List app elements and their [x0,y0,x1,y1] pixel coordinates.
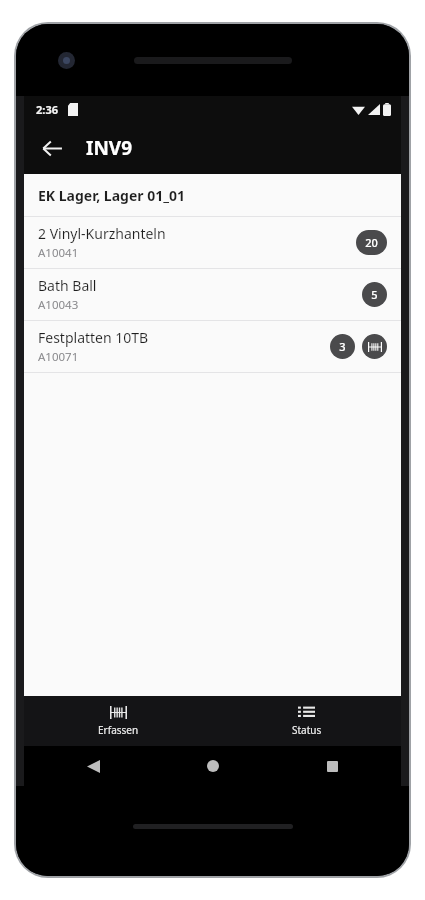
staticText: INV9 [86,135,133,161]
button[interactable]: EK Lager, Lager 01_01 [24,174,401,216]
staticText: Festplatten 10TB [38,328,149,347]
button[interactable]: Back [30,126,74,170]
staticText: 20 [365,235,378,250]
staticText: Erfassen [98,723,139,737]
button[interactable]: Scan barcode [362,334,387,359]
staticText: 2 Vinyl-Kurzhanteln [38,224,166,243]
staticText: 2:36 [36,102,58,117]
staticText: A10043 [38,297,79,313]
staticText: Status [292,723,322,737]
staticText: 5 [371,287,378,302]
button[interactable]: Bath Ball [24,269,401,320]
staticText: Bath Ball [38,276,97,295]
staticText: 3 [339,339,346,354]
button[interactable]: Festplatten 10TB [24,321,401,372]
staticText: A10041 [38,245,79,261]
button[interactable]: Recent apps [315,749,349,783]
staticText: A10071 [38,349,79,365]
staticText: EK Lager, Lager 01_01 [38,186,185,205]
button[interactable]: 2 Vinyl-Kurzhanteln [24,217,401,268]
button[interactable]: Back [76,749,110,783]
button[interactable]: Status [212,696,401,746]
button[interactable]: Erfassen [24,696,212,746]
button[interactable]: Home [196,749,230,783]
